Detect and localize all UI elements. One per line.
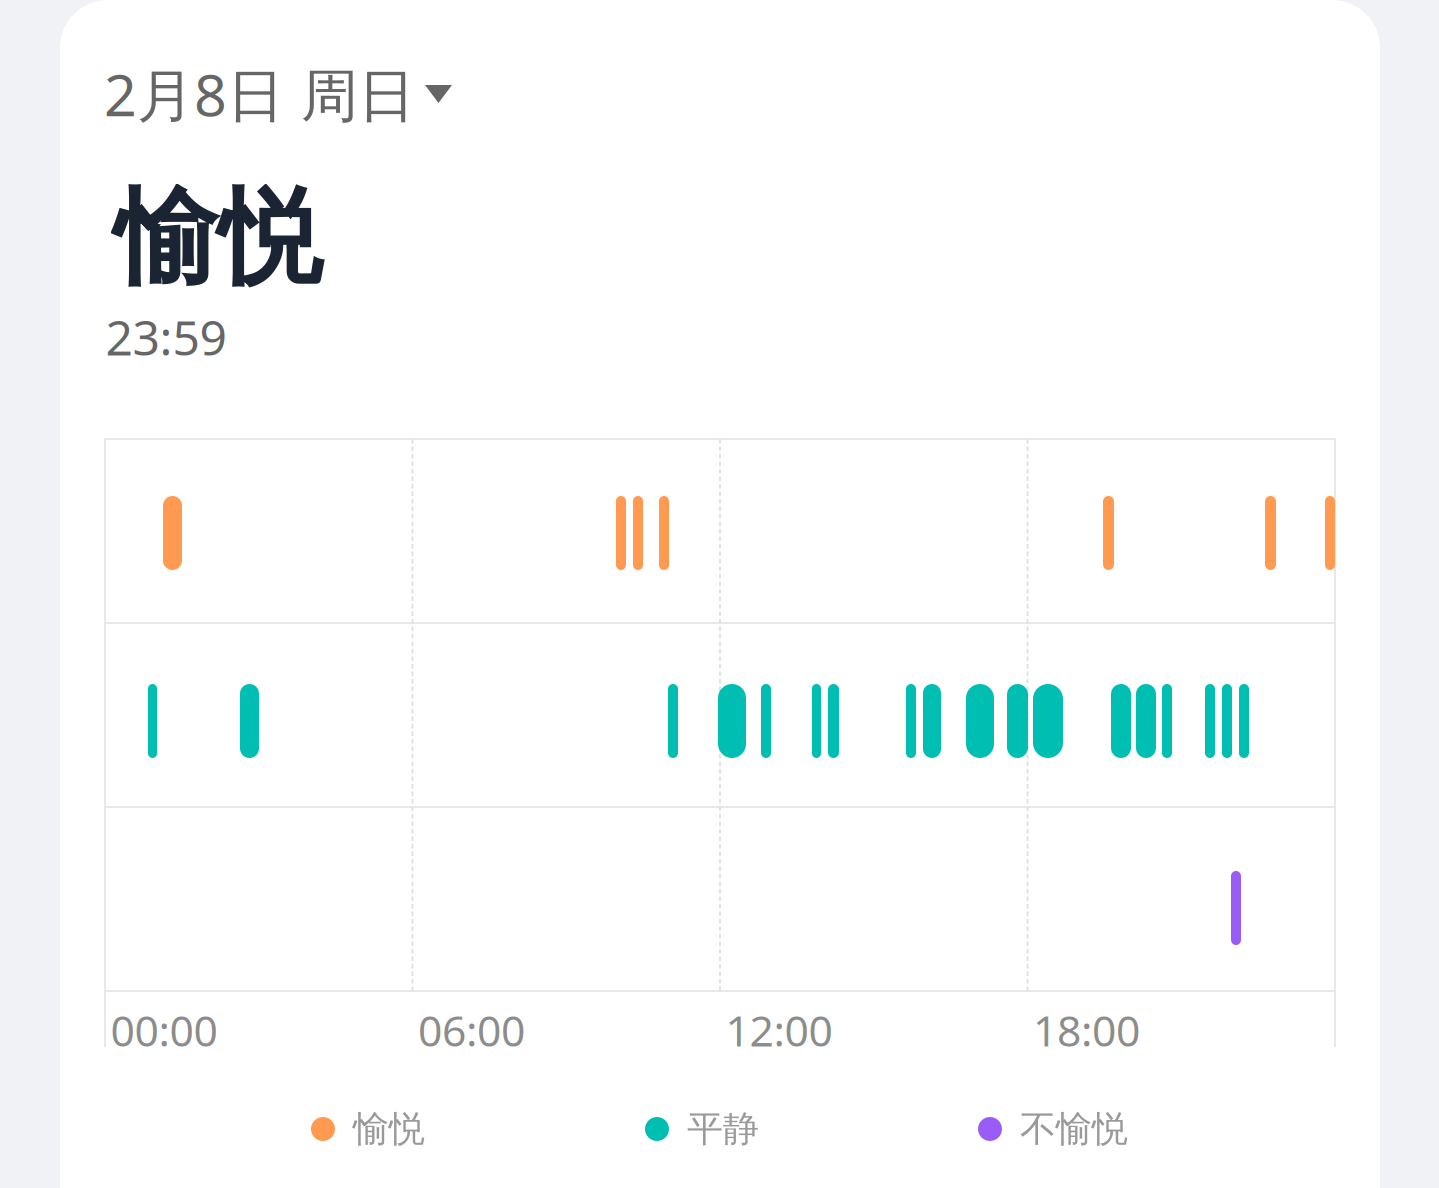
button[interactable]: 平静 [645, 1107, 759, 1151]
button[interactable]: 2月8日 周日 [104, 56, 452, 132]
staticText: 00:00 [110, 1002, 217, 1058]
staticText: 不愉悦 [1020, 1107, 1128, 1151]
staticText: 平静 [687, 1107, 759, 1151]
staticText: 23:59 [105, 305, 226, 369]
button[interactable]: 愉悦 [311, 1107, 425, 1151]
staticText: 12:00 [725, 1002, 832, 1058]
staticText: 18:00 [1033, 1002, 1140, 1058]
staticText: 06:00 [418, 1002, 525, 1058]
staticText: 愉悦 [114, 174, 322, 302]
staticText: 愉悦 [353, 1107, 425, 1151]
staticText: 2月8日 周日 [104, 56, 415, 132]
button[interactable]: 不愉悦 [978, 1107, 1128, 1151]
